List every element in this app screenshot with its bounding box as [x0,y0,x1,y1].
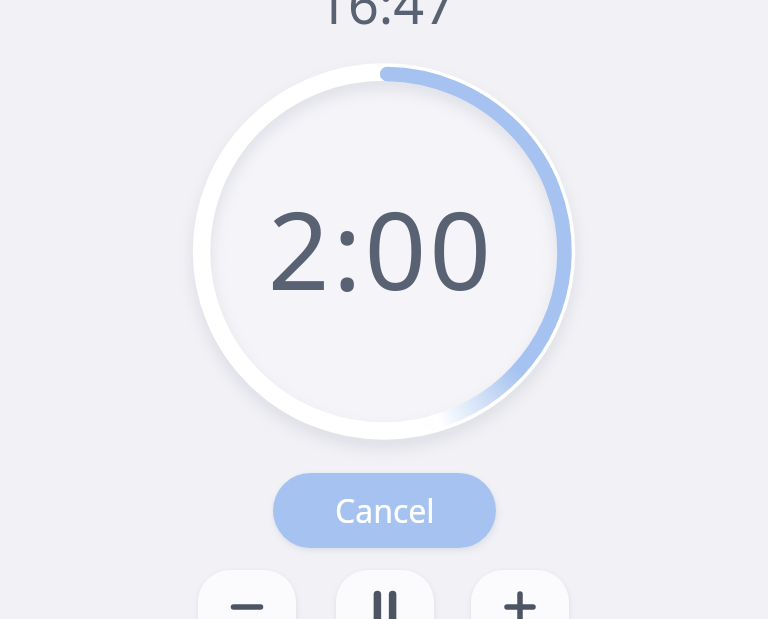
staticText: Cancel [335,489,435,533]
button[interactable] [198,570,296,619]
button[interactable] [471,570,569,619]
button[interactable] [336,570,434,619]
button[interactable]: Cancel [273,473,496,548]
staticText: 16:47 [286,0,486,36]
staticText: 2:00 [231,175,531,315]
